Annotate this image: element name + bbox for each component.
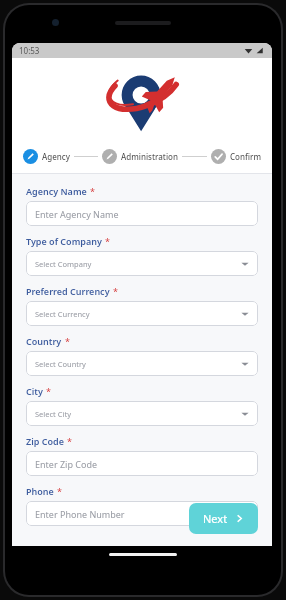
staticText: Type of Company — [26, 235, 102, 247]
staticText: Administration — [121, 151, 178, 162]
button[interactable]: Enter Agency Name — [26, 201, 258, 226]
button[interactable]: Select Currency — [26, 301, 258, 326]
staticText: 10:53 — [19, 45, 40, 56]
staticText: Agency Name — [26, 185, 87, 197]
staticText: Select Currency — [35, 309, 90, 319]
staticText: Enter Phone Number — [35, 508, 125, 520]
staticText: Country — [26, 335, 62, 347]
staticText: Confirm — [230, 151, 261, 162]
button[interactable]: Select Company — [26, 251, 258, 276]
staticText: Next — [203, 511, 228, 526]
button[interactable]: Confirm — [210, 148, 262, 165]
staticText: Select Country — [35, 359, 86, 369]
staticText: Enter Agency Name — [35, 208, 119, 220]
other: Open dropdown — [241, 260, 249, 268]
staticText: Select City — [35, 409, 71, 419]
staticText: Enter Zip Code — [35, 458, 98, 470]
button[interactable]: Enter Zip Code — [26, 451, 258, 476]
staticText: Agency — [42, 151, 70, 162]
other: Open dropdown — [241, 360, 249, 368]
staticText: Zip Code — [26, 435, 64, 447]
staticText: * — [65, 335, 70, 347]
button[interactable]: Agency — [22, 148, 71, 165]
staticText: * — [90, 185, 95, 197]
staticText: Preferred Currency — [26, 285, 110, 297]
staticText: Phone — [26, 485, 54, 497]
button[interactable]: Enter Phone Number — [26, 501, 258, 526]
button[interactable]: Administration — [101, 148, 179, 165]
staticText: * — [67, 435, 72, 447]
staticText: Select Company — [35, 259, 92, 269]
button[interactable]: Next — [189, 503, 258, 534]
other: Open dropdown — [241, 310, 249, 318]
staticText: * — [46, 385, 51, 397]
staticText: City — [26, 385, 43, 397]
staticText: * — [57, 485, 62, 497]
staticText: * — [105, 235, 110, 247]
other: Open dropdown — [241, 410, 249, 418]
button[interactable]: Select City — [26, 401, 258, 426]
staticText: * — [113, 285, 118, 297]
button[interactable]: Select Country — [26, 351, 258, 376]
